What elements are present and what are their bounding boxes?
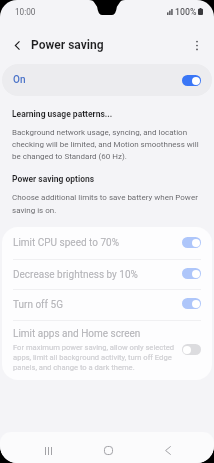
staticText: Decrease brightness by 10% [13, 269, 182, 281]
button[interactable]: Decrease brightness by 10% [2, 259, 212, 290]
button[interactable]: Recent apps [33, 435, 64, 463]
staticText: 100% [175, 7, 197, 17]
button[interactable]: Home [93, 435, 124, 463]
staticText: Power saving [31, 38, 104, 52]
button[interactable]: Limit apps and Home screen [2, 320, 212, 380]
staticText: 10:00 [15, 7, 36, 17]
staticText: For maximum power saving, allow only sel… [13, 343, 185, 372]
button[interactable]: Navigate up [6, 34, 28, 56]
button[interactable]: Limit CPU speed to 70% [2, 227, 212, 259]
staticText: Turn off 5G [13, 299, 182, 311]
staticText: Background network usage, syncing, and l… [12, 128, 204, 161]
staticText: Limit apps and Home screen [13, 328, 141, 340]
staticText: Learning usage patterns... [12, 109, 113, 119]
staticText: Limit CPU speed to 70% [13, 237, 182, 249]
button[interactable]: Back [152, 435, 183, 463]
staticText: On [13, 74, 26, 86]
staticText: Choose additional limits to save battery… [12, 193, 204, 215]
button[interactable]: On [2, 64, 212, 96]
button[interactable]: Turn off 5G [2, 289, 212, 320]
button[interactable]: More options [186, 34, 208, 56]
staticText: Power saving options [12, 174, 95, 184]
